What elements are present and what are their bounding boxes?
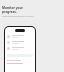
- staticText: Track every workout and stay on course.: [2, 15, 34, 17]
- staticText: Monitor your progress.: [2, 6, 23, 14]
